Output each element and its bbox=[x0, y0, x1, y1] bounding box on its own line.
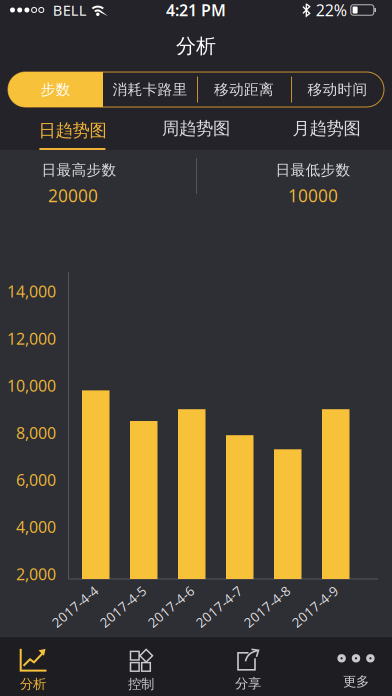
staticText: 步数 bbox=[40, 80, 70, 98]
staticText: 14,000 bbox=[7, 281, 56, 302]
button[interactable]: 月趋势图 bbox=[261, 107, 392, 150]
staticText: 2017-4-6 bbox=[143, 598, 199, 615]
staticText: 周趋势图 bbox=[162, 118, 230, 139]
staticText: 消耗卡路里 bbox=[112, 80, 187, 98]
staticText: 移动距离 bbox=[214, 80, 274, 98]
staticText: 分享 bbox=[235, 675, 261, 692]
button[interactable]: 控制 bbox=[106, 642, 176, 696]
staticText: 4,000 bbox=[16, 516, 56, 537]
staticText: 移动时间 bbox=[307, 80, 367, 98]
staticText: 分析 bbox=[20, 676, 46, 692]
button[interactable]: 消耗卡路里 bbox=[103, 72, 197, 107]
staticText: 2017-4-5 bbox=[95, 598, 151, 615]
staticText: 更多 bbox=[343, 673, 369, 690]
button[interactable]: 更多 bbox=[321, 642, 391, 696]
button[interactable]: 分析 bbox=[0, 642, 68, 696]
staticText: 2017-4-7 bbox=[191, 598, 247, 615]
staticText: BELL bbox=[53, 0, 87, 20]
staticText: 20000 bbox=[48, 184, 98, 207]
button[interactable]: 周趋势图 bbox=[131, 107, 261, 150]
staticText: 6,000 bbox=[16, 469, 56, 490]
staticText: 10000 bbox=[288, 184, 338, 207]
staticText: 控制 bbox=[128, 676, 154, 692]
staticText: 日最低步数 bbox=[275, 161, 350, 179]
staticText: 22% bbox=[316, 0, 347, 21]
staticText: 分析 bbox=[176, 34, 216, 58]
button[interactable]: 移动时间 bbox=[291, 72, 384, 107]
staticText: 2017-4-4 bbox=[47, 598, 103, 615]
staticText: 月趋势图 bbox=[293, 118, 361, 139]
staticText: 12,000 bbox=[7, 328, 56, 349]
staticText: 2,000 bbox=[16, 563, 56, 585]
staticText: 日趋势图 bbox=[38, 120, 106, 141]
staticText: 4:21 PM bbox=[166, 0, 226, 21]
button[interactable]: 日趋势图 bbox=[0, 107, 131, 150]
button[interactable]: 移动距离 bbox=[197, 72, 291, 107]
button[interactable]: 分享 bbox=[213, 642, 283, 696]
staticText: 10,000 bbox=[7, 375, 56, 396]
staticText: 2017-4-9 bbox=[287, 598, 343, 615]
button[interactable]: 步数 bbox=[8, 72, 103, 107]
staticText: 2017-4-8 bbox=[239, 598, 295, 615]
staticText: 8,000 bbox=[16, 422, 56, 443]
staticText: 日最高步数 bbox=[41, 161, 116, 179]
